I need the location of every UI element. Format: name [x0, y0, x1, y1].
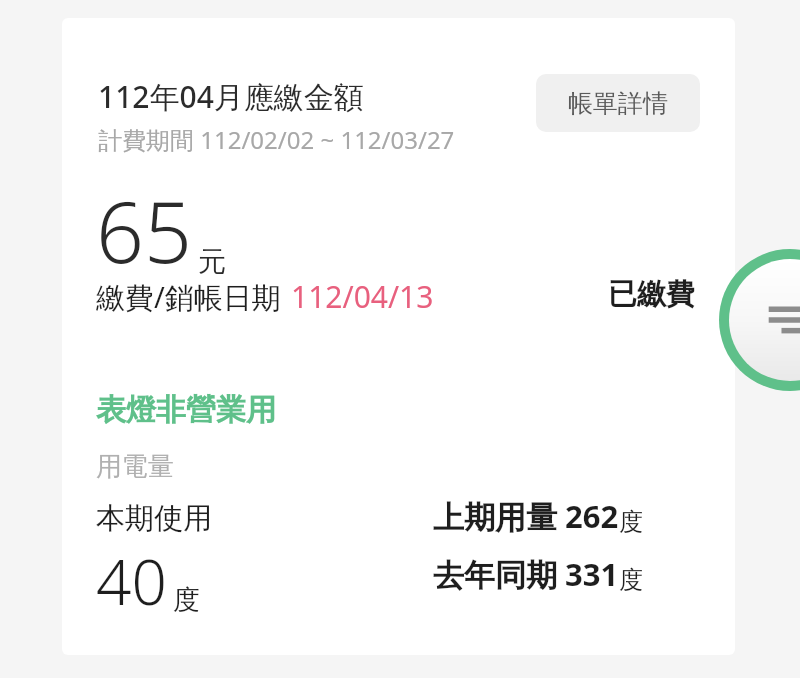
staticText: 上期用量 262 — [433, 495, 619, 537]
staticText: 112年04月應繳金額 — [98, 76, 364, 117]
staticText: 度 — [173, 583, 200, 617]
staticText: 去年同期 331 — [433, 553, 619, 595]
staticText: 元 — [198, 244, 226, 279]
button[interactable]: Menu — [719, 249, 800, 391]
button[interactable]: 帳單詳情 — [536, 74, 700, 132]
staticText: 帳單詳情 — [568, 88, 668, 119]
staticText: 計費期間 112/02/02 ~ 112/03/27 — [98, 123, 455, 156]
staticText: 用電量 — [96, 450, 174, 483]
staticText: 已繳費 — [608, 276, 695, 313]
staticText: 112/04/13 — [291, 276, 434, 317]
staticText: 表燈非營業用 — [96, 391, 276, 429]
staticText: 65 — [96, 173, 192, 287]
staticText: 度 — [619, 507, 643, 537]
staticText: 40 — [96, 539, 167, 623]
staticText: 度 — [619, 565, 643, 595]
staticText: 本期使用 — [96, 500, 212, 537]
staticText: 繳費/銷帳日期 — [96, 277, 281, 317]
